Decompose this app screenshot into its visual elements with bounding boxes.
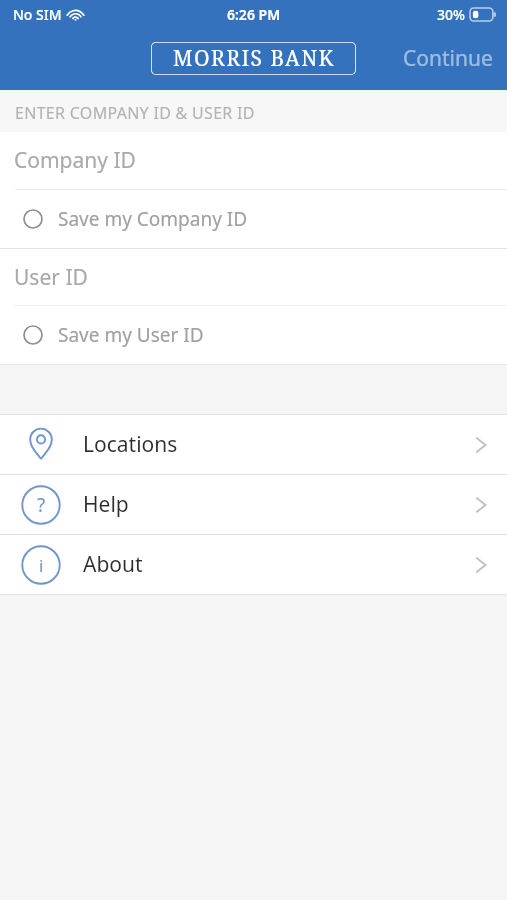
button[interactable]: Continue [403,44,493,73]
button[interactable]: Save my User ID [0,306,507,364]
staticText: i [39,554,44,577]
staticText: MORRIS BANK [173,44,335,73]
staticText: ENTER COMPANY ID & USER ID [15,102,255,124]
button[interactable]: Save my Company ID [0,190,507,248]
staticText: ? [37,492,46,518]
staticText: Save my User ID [58,322,204,348]
button[interactable]: i [0,535,507,594]
button[interactable]: MORRIS BANK [151,42,356,75]
staticText: No SIM [13,5,62,24]
staticText: Save my Company ID [58,206,248,232]
staticText: About [83,550,143,579]
button[interactable]: Locations [0,415,507,474]
staticText: Help [83,490,129,519]
button[interactable]: Company ID [0,132,507,189]
button[interactable]: User ID [0,249,507,305]
staticText: Locations [83,430,178,459]
staticText: Continue [403,44,493,73]
staticText: 30% [437,5,465,24]
button[interactable]: ? [0,475,507,534]
staticText: 6:26 PM [227,5,281,24]
staticText: User ID [14,263,88,292]
staticText: Company ID [14,146,136,175]
